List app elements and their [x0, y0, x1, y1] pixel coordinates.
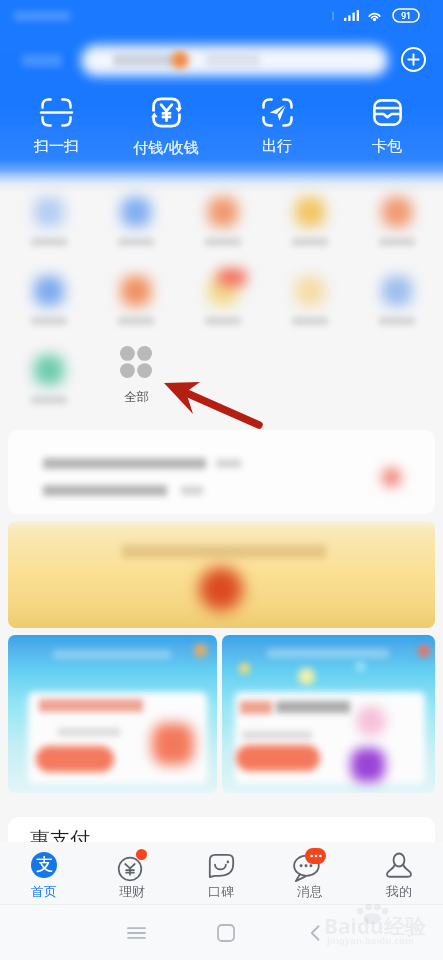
- button[interactable]: [93, 265, 179, 327]
- other: Travel: [260, 96, 295, 129]
- staticText: 理财: [119, 883, 145, 899]
- staticText: 付钱/收钱: [133, 137, 199, 157]
- button[interactable]: 口碑: [176, 842, 265, 904]
- staticText: 口碑: [208, 883, 234, 899]
- button[interactable]: [93, 186, 179, 248]
- button[interactable]: 全部: [93, 344, 179, 406]
- other: Scan: [39, 96, 74, 129]
- button[interactable]: Search: [79, 44, 388, 76]
- staticText: 出行: [262, 137, 292, 156]
- button[interactable]: 理财: [88, 842, 176, 904]
- staticText: 卡包: [372, 137, 402, 156]
- button[interactable]: [6, 344, 92, 406]
- staticText: 全部: [124, 389, 149, 405]
- button[interactable]: [180, 186, 266, 248]
- staticText: 消息: [297, 883, 323, 899]
- button[interactable]: [6, 265, 92, 327]
- button[interactable]: [180, 265, 266, 327]
- staticText: 扫一扫: [34, 137, 79, 156]
- button[interactable]: Home: [181, 905, 270, 960]
- staticText: 91: [401, 10, 411, 22]
- button[interactable]: Scan: [1, 96, 111, 162]
- button[interactable]: [222, 635, 435, 793]
- button[interactable]: 支: [0, 842, 88, 904]
- button[interactable]: Cards: [332, 96, 442, 162]
- staticText: 我的: [386, 883, 412, 899]
- button[interactable]: [267, 186, 353, 248]
- other: Pay: [149, 96, 184, 129]
- staticText: jingyan.baidu.com: [327, 934, 415, 947]
- button[interactable]: [354, 186, 440, 248]
- button[interactable]: [267, 265, 353, 327]
- button[interactable]: 我的: [354, 842, 443, 904]
- staticText: 惠支付: [30, 827, 90, 847]
- button[interactable]: [6, 186, 92, 248]
- button[interactable]: Travel: [222, 96, 332, 162]
- button[interactable]: 惠支付: [8, 817, 435, 847]
- button[interactable]: [354, 265, 440, 327]
- staticText: Baidu经验: [324, 912, 426, 941]
- button[interactable]: [8, 635, 217, 793]
- button[interactable]: Add: [397, 43, 430, 76]
- staticText: 支: [36, 854, 53, 875]
- other: Cards: [370, 96, 405, 129]
- button[interactable]: Back: [270, 905, 359, 960]
- button[interactable]: Pay: [111, 96, 221, 162]
- button[interactable]: [8, 430, 435, 514]
- button[interactable]: Recents: [92, 905, 181, 960]
- button[interactable]: 消息: [265, 842, 354, 904]
- staticText: 首页: [31, 883, 57, 899]
- button[interactable]: [8, 521, 435, 628]
